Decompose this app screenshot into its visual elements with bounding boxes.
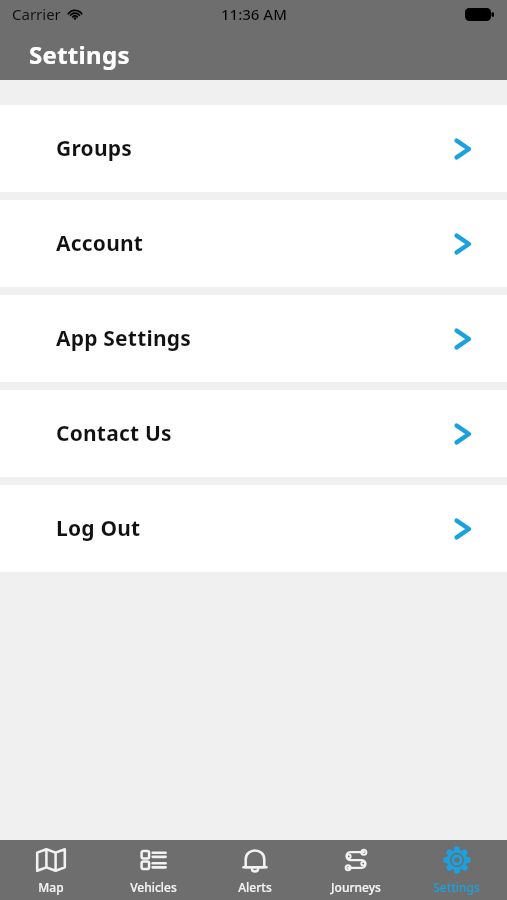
staticText: Contact Us — [56, 419, 453, 448]
staticText: Log Out — [56, 514, 453, 543]
staticText: Settings — [433, 879, 480, 895]
staticText: Alerts — [238, 879, 272, 895]
button[interactable]: Map — [0, 840, 102, 900]
button[interactable]: Account — [0, 200, 507, 287]
button[interactable]: Alerts — [204, 840, 305, 900]
button[interactable]: Vehicles — [102, 840, 204, 900]
staticText: Vehicles — [130, 879, 177, 895]
staticText: Settings — [29, 38, 130, 71]
button[interactable]: Contact Us — [0, 390, 507, 477]
staticText: Account — [56, 229, 453, 258]
staticText: Journeys — [331, 879, 381, 895]
staticText: 11:36 AM — [221, 4, 287, 24]
button[interactable]: Settings — [406, 840, 507, 900]
button[interactable]: Log Out — [0, 485, 507, 572]
button[interactable]: Journeys — [305, 840, 406, 900]
staticText: Carrier — [12, 4, 61, 24]
button[interactable]: Groups — [0, 105, 507, 192]
button[interactable]: App Settings — [0, 295, 507, 382]
staticText: Groups — [56, 134, 453, 163]
staticText: App Settings — [56, 324, 453, 353]
staticText: Map — [38, 879, 64, 895]
